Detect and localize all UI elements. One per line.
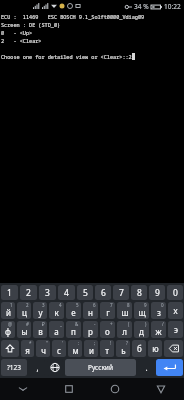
staticText: о xyxy=(105,326,110,337)
staticText: й xyxy=(6,307,11,318)
button[interactable]: * xyxy=(21,340,34,357)
staticText: ₽ xyxy=(42,321,45,327)
staticText: 6 xyxy=(93,302,96,308)
staticText: ж xyxy=(155,326,162,337)
button[interactable]: 4 xyxy=(58,285,75,300)
staticText: ц xyxy=(22,307,27,318)
staticText: 0 xyxy=(173,287,178,299)
button[interactable]: # xyxy=(17,321,31,338)
staticText: 1 xyxy=(7,287,12,299)
button[interactable]: 6 xyxy=(83,302,98,319)
staticText: ?123 xyxy=(7,363,21,372)
button[interactable]: б xyxy=(132,340,146,357)
staticText: 7 xyxy=(119,287,124,299)
staticText: 2 - <Clear> xyxy=(1,37,42,45)
button[interactable]: 9 xyxy=(134,302,149,319)
button[interactable]: 6 xyxy=(95,285,111,300)
button[interactable]: : xyxy=(68,340,82,357)
button[interactable]: 3 xyxy=(39,285,56,300)
staticText: к xyxy=(54,307,59,318)
button[interactable]: Shift xyxy=(1,340,19,357)
button[interactable]: 8 xyxy=(117,302,132,319)
staticText: 8 xyxy=(127,302,130,308)
staticText: 0 - <Up> xyxy=(1,29,33,37)
button[interactable]: Change language xyxy=(47,359,63,376)
button[interactable]: ! xyxy=(100,340,114,357)
button[interactable]: / xyxy=(151,321,166,338)
staticText: 3 xyxy=(45,287,50,299)
staticText: 6 xyxy=(101,287,106,299)
button[interactable]: э xyxy=(168,321,183,338)
staticText: е xyxy=(71,307,76,318)
button[interactable]: 5 xyxy=(66,302,81,319)
button[interactable]: 0 xyxy=(167,285,183,300)
button[interactable]: Hide keyboard xyxy=(0,378,46,400)
staticText: . xyxy=(145,362,148,373)
staticText: ) xyxy=(145,321,147,327)
staticText: ю xyxy=(152,343,159,354)
button[interactable]: Recent apps xyxy=(46,378,92,400)
staticText: м xyxy=(72,345,79,356)
staticText: 5 xyxy=(83,287,88,299)
button[interactable]: 3 xyxy=(33,302,47,319)
staticText: 0 xyxy=(161,302,164,308)
staticText: Screen : DE (STD_0) xyxy=(1,21,61,29)
staticText: / xyxy=(162,321,164,327)
button[interactable]: & xyxy=(66,321,81,338)
button[interactable]: 2 xyxy=(20,285,37,300)
staticText: л xyxy=(122,326,127,337)
button[interactable]: ?123 xyxy=(1,359,27,376)
staticText: 9 xyxy=(144,302,147,308)
staticText: р xyxy=(88,326,93,337)
button[interactable]: х xyxy=(168,302,183,319)
button[interactable]: + xyxy=(100,321,115,338)
button[interactable]: Backspace xyxy=(164,340,183,357)
button[interactable]: 9 xyxy=(149,285,165,300)
button[interactable]: @ xyxy=(1,321,15,338)
staticText: 34 % xyxy=(134,2,149,11)
button[interactable]: _ xyxy=(49,321,64,338)
button[interactable]: ₽ xyxy=(33,321,47,338)
button[interactable]: ) xyxy=(134,321,149,338)
button[interactable]: ? xyxy=(116,340,130,357)
button[interactable]: 4 xyxy=(49,302,64,319)
staticText: э xyxy=(174,324,178,335)
button[interactable]: . xyxy=(138,359,154,376)
staticText: # xyxy=(26,321,29,327)
staticText: * xyxy=(29,340,32,346)
button[interactable]: 1 xyxy=(1,302,15,319)
button[interactable]: ; xyxy=(84,340,98,357)
staticText: - xyxy=(94,321,96,327)
button[interactable]: Enter xyxy=(156,359,183,376)
staticText: 5 xyxy=(76,302,79,308)
button[interactable]: , xyxy=(29,359,45,376)
staticText: ECU : 11469 ESC BOSCH 9.1_Solft0000_Vdia… xyxy=(1,13,145,21)
staticText: я xyxy=(25,345,30,356)
button[interactable]: - xyxy=(83,321,98,338)
button[interactable]: 0 xyxy=(151,302,166,319)
staticText: ф xyxy=(5,326,11,337)
button[interactable]: 1 xyxy=(1,285,18,300)
staticText: ' xyxy=(62,340,64,346)
staticText: 10:22 xyxy=(164,2,181,11)
staticText: 8 xyxy=(137,287,142,299)
button[interactable]: ' xyxy=(52,340,66,357)
button[interactable]: 5 xyxy=(77,285,93,300)
staticText: : xyxy=(78,340,80,346)
button[interactable]: Home xyxy=(92,378,138,400)
button[interactable]: Back xyxy=(138,378,184,400)
staticText: Русский xyxy=(88,363,113,372)
staticText: , xyxy=(36,362,39,373)
button[interactable]: 8 xyxy=(131,285,147,300)
button[interactable]: ю xyxy=(148,340,162,357)
button[interactable]: " xyxy=(36,340,50,357)
button[interactable]: 7 xyxy=(113,285,129,300)
button[interactable]: 7 xyxy=(100,302,115,319)
button[interactable]: Русский xyxy=(65,359,136,376)
staticText: Choose one for detailed view or <Clear>:… xyxy=(1,53,132,60)
button[interactable]: ( xyxy=(117,321,132,338)
staticText: с xyxy=(57,345,61,356)
button[interactable]: 2 xyxy=(17,302,31,319)
staticText: д xyxy=(139,326,144,337)
staticText: 2 xyxy=(26,287,31,299)
